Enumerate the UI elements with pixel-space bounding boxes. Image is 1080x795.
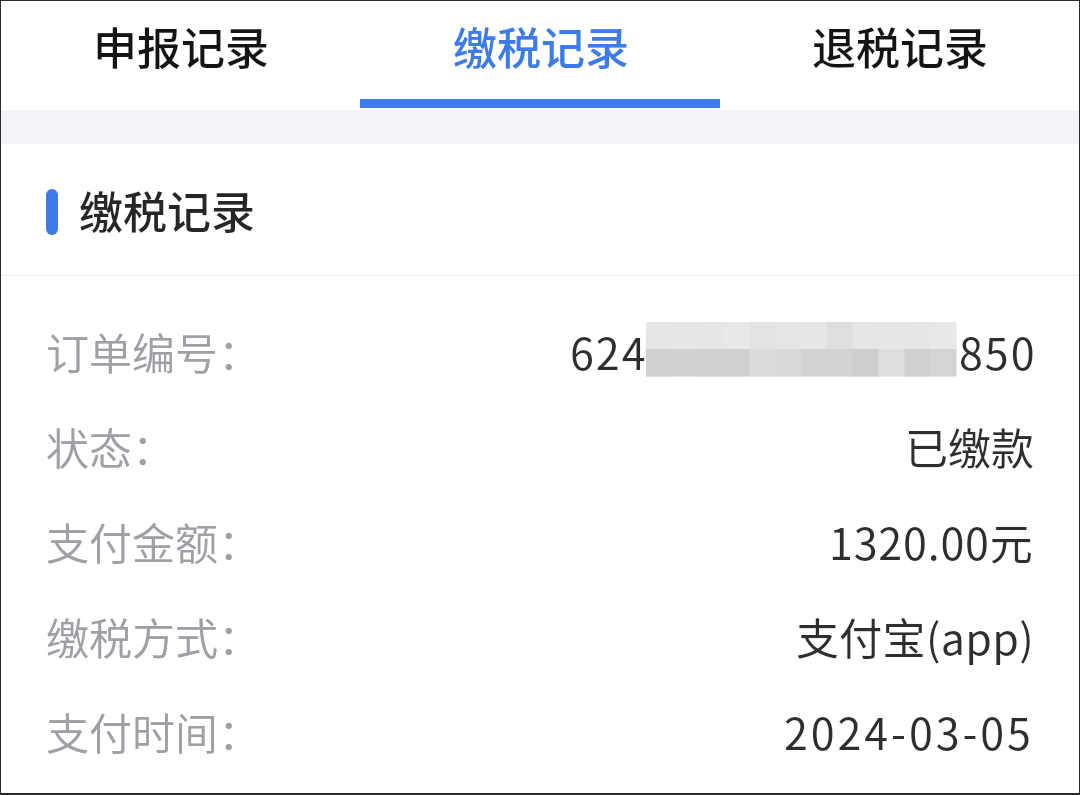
button[interactable]: 缴税方式： [1, 588, 1079, 683]
staticText: 1320.00元 [829, 510, 1034, 572]
staticText: 缴税方式： [46, 605, 261, 667]
staticText: 缴税记录 [79, 178, 255, 242]
button[interactable]: 订单编号： [1, 303, 1079, 398]
staticText: 624 [570, 320, 648, 382]
button[interactable]: 缴税记录 [361, 1, 720, 110]
button[interactable]: 支付时间： [1, 683, 1079, 778]
button[interactable]: 申报记录 [1, 1, 361, 110]
staticText: 缴税记录 [453, 14, 629, 78]
staticText: 申报记录 [93, 14, 269, 78]
staticText: 支付金额： [46, 510, 261, 572]
button[interactable]: 退税记录 [720, 1, 1079, 110]
staticText: 已缴款 [905, 415, 1034, 477]
staticText: 850 [959, 320, 1037, 382]
staticText: 状态： [46, 415, 175, 477]
staticText: 2024-03-05 [784, 700, 1034, 762]
button[interactable]: 状态： [1, 398, 1079, 493]
staticText: 退税记录 [812, 14, 988, 78]
button[interactable]: 支付金额： [1, 493, 1079, 588]
other: Hidden order number [646, 322, 956, 376]
staticText: 订单编号： [46, 320, 261, 382]
staticText: 支付宝(app) [796, 605, 1034, 667]
staticText: 支付时间： [46, 700, 261, 762]
